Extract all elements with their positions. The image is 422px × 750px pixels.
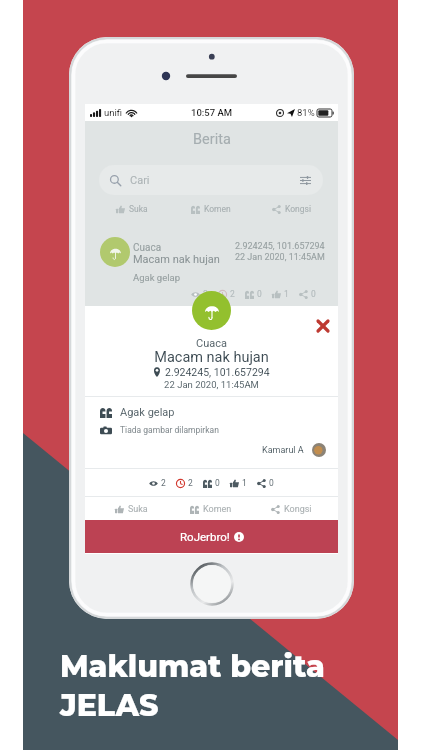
button[interactable]: Kongsi [251,500,331,518]
staticText: 2 [203,289,208,299]
staticText: Tiada gambar dilampirkan [120,425,219,435]
staticText: Cari [130,174,150,187]
staticText: Macam nak hujan [133,253,220,266]
staticText: Komen [204,204,231,214]
button[interactable]: Cari [99,165,323,195]
staticText: Kongsi [284,504,312,515]
button[interactable]: Komen [171,500,251,518]
staticText: 1 [242,478,247,488]
button[interactable]: stat 2 [176,478,193,488]
staticText: 2 [230,289,235,299]
staticText: 22 Jan 2020, 11:45AM [235,252,325,263]
button[interactable]: stat 2 [218,289,235,299]
button[interactable]: stat 0 [245,289,262,299]
staticText: 0 [269,478,274,488]
staticText: Komen [203,504,232,515]
staticText: unifi [104,107,123,118]
staticText: 2 [161,478,166,488]
staticText: Berita [193,131,231,148]
staticText: 0 [257,289,262,299]
staticText: Kongsi [285,204,311,214]
staticText: Cuaca [85,337,338,350]
button[interactable]: stat 0 [203,478,220,488]
staticText: 2.924245, 101.657294 [235,241,325,252]
button[interactable]: stat 2 [191,289,208,299]
staticText: Suka [128,504,148,515]
button[interactable]: Close [312,315,333,336]
staticText: Agak gelap [120,406,175,419]
staticText: 0 [215,478,220,488]
staticText: 22 Jan 2020, 11:45AM [85,379,338,390]
button[interactable]: stat 1 [272,289,289,299]
button[interactable]: Komen [171,200,251,218]
staticText: 2.924245, 101.657294 [165,366,270,378]
staticText: 2 [188,478,193,488]
button[interactable]: Suka [92,200,171,218]
staticText: Maklumat berita [60,648,325,685]
staticText: 10:57 AM [191,107,233,118]
staticText: Suka [129,204,148,214]
button[interactable]: stat 0 [257,478,274,488]
staticText: JELAS [60,687,159,724]
button[interactable]: stat 0 [299,289,316,299]
button[interactable]: Suka [92,500,171,518]
staticText: 0 [311,289,316,299]
staticText: Agak gelap [133,272,181,283]
button[interactable]: stat 1 [230,478,247,488]
button[interactable]: RoJerbro! [85,520,338,553]
button[interactable]: stat 2 [149,478,166,488]
staticText: Cuaca [133,242,162,254]
staticText: 81% [297,107,315,118]
staticText: Macam nak hujan [85,349,338,366]
button[interactable]: Kongsi [251,200,331,218]
staticText: 1 [284,289,289,299]
staticText: Kamarul A [262,445,304,456]
staticText: RoJerbro! [180,530,230,543]
